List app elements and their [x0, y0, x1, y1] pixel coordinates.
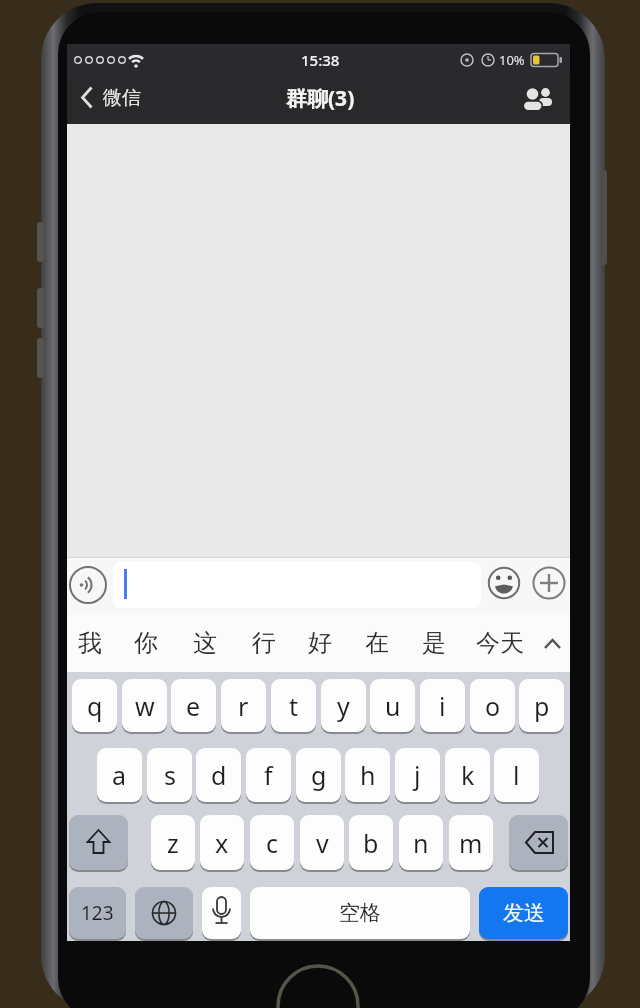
button[interactable] [534, 617, 570, 669]
button[interactable] [202, 887, 241, 941]
button[interactable] [509, 815, 568, 872]
staticText: g [311, 758, 327, 792]
staticText: j [414, 758, 421, 792]
staticText: 微信 [103, 86, 141, 110]
button[interactable]: 123 [69, 887, 126, 941]
button[interactable]: o [470, 679, 515, 734]
button[interactable]: 今天 [468, 617, 532, 669]
staticText: 你 [134, 628, 158, 658]
button[interactable]: t [271, 679, 316, 734]
button[interactable]: 我 [70, 617, 110, 669]
button[interactable]: z [151, 815, 195, 872]
button[interactable]: h [345, 748, 390, 804]
staticText: 这 [193, 628, 217, 658]
button[interactable]: w [122, 679, 167, 734]
staticText: u [385, 689, 401, 723]
button[interactable]: 空格 [250, 887, 470, 941]
button[interactable] [532, 565, 568, 601]
button[interactable]: i [420, 679, 465, 734]
button[interactable]: e [171, 679, 216, 734]
button[interactable]: r [221, 679, 266, 734]
staticText: 15:38 [301, 50, 340, 70]
staticText: 发送 [503, 900, 545, 926]
staticText: e [186, 689, 201, 723]
staticText: o [485, 689, 501, 723]
staticText: x [215, 826, 229, 860]
staticText: v [316, 826, 329, 860]
staticText: 空格 [339, 900, 381, 926]
button[interactable]: j [395, 748, 440, 804]
staticText: d [211, 758, 227, 792]
staticText: p [534, 689, 550, 723]
button[interactable]: a [97, 748, 142, 804]
button[interactable]: f [246, 748, 291, 804]
button[interactable]: v [300, 815, 344, 872]
button[interactable] [514, 80, 560, 118]
button[interactable]: n [399, 815, 443, 872]
button[interactable]: p [519, 679, 564, 734]
button[interactable] [72, 80, 162, 118]
button[interactable]: m [449, 815, 493, 872]
staticText: 行 [252, 628, 276, 658]
button[interactable] [69, 815, 128, 872]
staticText: k [461, 758, 475, 792]
staticText: h [360, 758, 376, 792]
button[interactable]: q [72, 679, 117, 734]
staticText: s [164, 758, 176, 792]
button[interactable]: g [296, 748, 341, 804]
button[interactable]: d [196, 748, 241, 804]
button[interactable]: y [321, 679, 366, 734]
staticText: y [337, 689, 350, 723]
button[interactable]: s [147, 748, 192, 804]
staticText: z [167, 826, 179, 860]
staticText: w [135, 689, 155, 723]
staticText: 今天 [476, 628, 524, 658]
staticText: l [513, 758, 520, 792]
button[interactable]: 这 [185, 617, 225, 669]
button[interactable]: 发送 [479, 887, 568, 941]
staticText: 10% [499, 51, 525, 69]
staticText: 123 [81, 900, 114, 926]
staticText: 在 [365, 628, 389, 658]
button[interactable] [113, 562, 481, 608]
staticText: 群聊(3) [286, 84, 355, 113]
staticText: a [112, 758, 127, 792]
staticText: n [413, 826, 429, 860]
staticText: i [439, 689, 446, 723]
button[interactable] [486, 565, 522, 601]
button[interactable]: 你 [126, 617, 166, 669]
staticText: m [459, 826, 483, 860]
staticText: f [264, 758, 273, 792]
button[interactable] [135, 887, 193, 941]
staticText: q [87, 689, 103, 723]
staticText: 好 [308, 628, 332, 658]
button[interactable]: 在 [357, 617, 397, 669]
button[interactable]: 是 [414, 617, 454, 669]
button[interactable]: l [494, 748, 539, 804]
button[interactable]: k [445, 748, 490, 804]
staticText: c [266, 826, 279, 860]
button[interactable]: 好 [300, 617, 340, 669]
staticText: b [363, 826, 379, 860]
button[interactable]: c [250, 815, 294, 872]
staticText: r [238, 689, 249, 723]
button[interactable]: b [349, 815, 393, 872]
staticText: 我 [78, 628, 102, 658]
button[interactable]: x [200, 815, 244, 872]
staticText: 是 [422, 628, 446, 658]
button[interactable]: 行 [244, 617, 284, 669]
button[interactable]: u [370, 679, 415, 734]
staticText: t [289, 689, 299, 723]
